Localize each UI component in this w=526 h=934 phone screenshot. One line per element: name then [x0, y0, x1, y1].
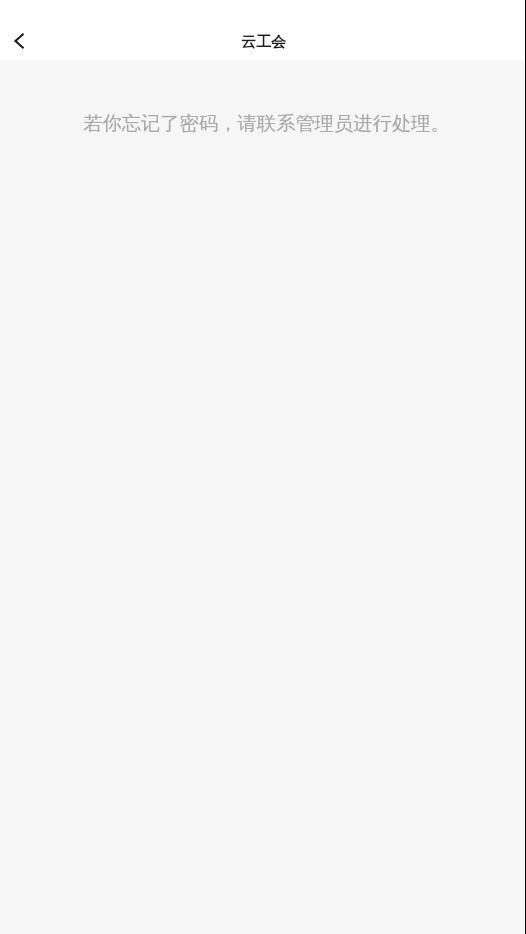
staticText: 云工会 [241, 33, 286, 52]
button[interactable]: Back [0, 21, 40, 61]
staticText: 若你忘记了密码，请联系管理员进行处理。 [83, 111, 450, 135]
